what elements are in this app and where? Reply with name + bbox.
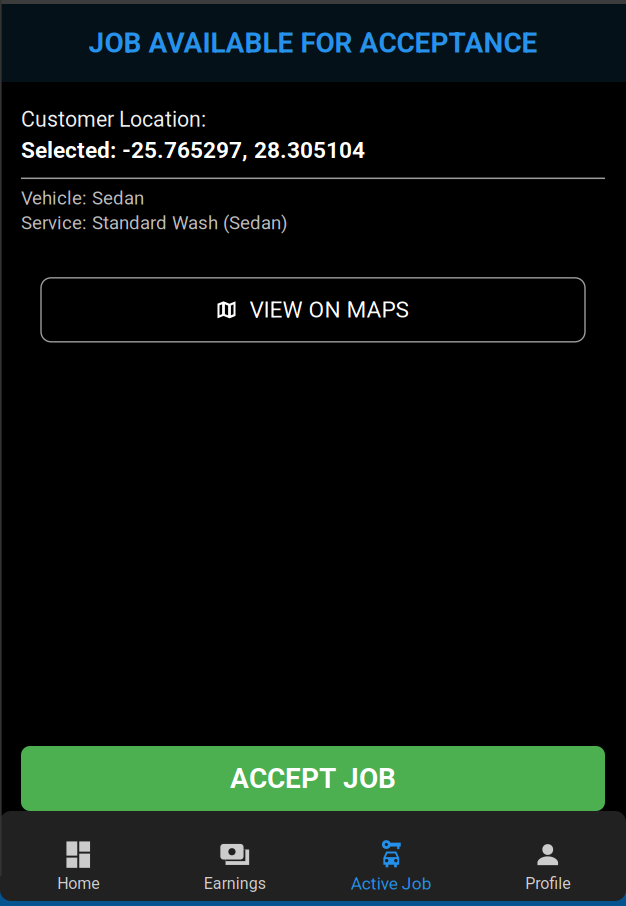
staticText: Earnings bbox=[204, 874, 266, 893]
staticText: VIEW ON MAPS bbox=[249, 296, 408, 323]
staticText: ACCEPT JOB bbox=[230, 762, 396, 795]
staticText: JOB AVAILABLE FOR ACCEPTANCE bbox=[88, 27, 537, 59]
staticText: Active Job bbox=[351, 873, 432, 894]
staticText: Service: Standard Wash (Sedan) bbox=[21, 212, 287, 234]
staticText: Customer Location: bbox=[21, 107, 206, 132]
button[interactable]: ACCEPT JOB bbox=[21, 746, 605, 811]
button[interactable]: Active Job bbox=[313, 829, 469, 903]
button[interactable]: Earnings bbox=[156, 830, 313, 902]
staticText: Home bbox=[57, 874, 99, 893]
button[interactable]: Home bbox=[0, 830, 156, 902]
button[interactable]: VIEW ON MAPS bbox=[41, 278, 585, 342]
staticText: Vehicle: Sedan bbox=[21, 187, 144, 209]
staticText: Selected: -25.765297, 28.305104 bbox=[21, 137, 365, 164]
button[interactable]: Profile bbox=[469, 830, 626, 902]
staticText: Profile bbox=[525, 874, 570, 893]
